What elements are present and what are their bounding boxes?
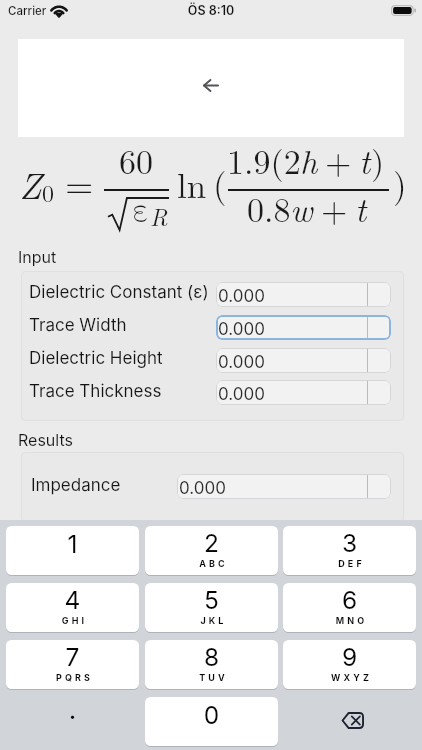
staticText: Carrier xyxy=(8,4,47,18)
staticText: PQRS xyxy=(8,672,139,683)
staticText: . xyxy=(6,694,139,725)
staticText: t xyxy=(359,136,371,184)
button[interactable]: Back xyxy=(197,73,225,98)
staticText: ε xyxy=(132,194,151,229)
staticText: TUV xyxy=(147,672,278,683)
staticText: JKL xyxy=(147,615,278,626)
staticText: 7 xyxy=(6,642,139,672)
staticText: 9 xyxy=(283,642,416,672)
staticText: 0.000 xyxy=(218,352,265,373)
staticText: DEF xyxy=(285,558,416,569)
button[interactable]: 4 xyxy=(6,583,139,632)
button[interactable]: 0.000 xyxy=(216,315,391,340)
button[interactable]: 6 xyxy=(283,583,416,632)
staticText: Impedance xyxy=(31,475,121,496)
staticText: Z xyxy=(19,157,42,209)
staticText: 4 xyxy=(6,585,139,615)
staticText: ÖS 8:10 xyxy=(0,3,422,18)
button[interactable]: Decimal point xyxy=(6,697,139,746)
staticText: 0 xyxy=(42,175,54,209)
staticText: Input xyxy=(18,247,57,266)
staticText: ( xyxy=(213,158,227,208)
staticText: 3 xyxy=(283,528,416,558)
staticText: w xyxy=(290,184,313,232)
staticText: 0.000 xyxy=(218,384,265,405)
staticText: ) xyxy=(371,136,385,184)
button[interactable]: 3 xyxy=(283,526,416,575)
button[interactable]: 0.000 xyxy=(177,474,391,499)
staticText: 1.9(2 xyxy=(227,136,301,184)
staticText: t xyxy=(355,184,367,232)
staticText: ABC xyxy=(147,558,278,569)
staticText: 0.000 xyxy=(218,286,265,307)
staticText: 8 xyxy=(145,642,278,672)
staticText: Trace Width xyxy=(29,315,127,336)
button[interactable]: 2 xyxy=(145,526,278,575)
staticText: 0 xyxy=(145,700,278,730)
staticText: 0.8 xyxy=(247,184,291,232)
staticText: Trace Thickness xyxy=(29,381,162,402)
staticText: WXYZ xyxy=(285,672,416,683)
staticText: 0.000 xyxy=(218,319,265,340)
staticText: h xyxy=(300,136,318,184)
staticText: + xyxy=(325,136,352,184)
staticText: 2 xyxy=(145,528,278,558)
button[interactable]: 0.000 xyxy=(216,380,391,405)
button[interactable]: 0.000 xyxy=(216,282,391,307)
staticText: ) xyxy=(393,158,407,208)
button[interactable]: 7 xyxy=(6,640,139,689)
button[interactable]: 8 xyxy=(145,640,278,689)
staticText: 60 xyxy=(119,136,153,184)
staticText: ln xyxy=(177,159,207,209)
staticText: R xyxy=(150,199,168,233)
button[interactable]: 1 xyxy=(6,526,139,575)
button[interactable]: 0.000 xyxy=(216,348,391,373)
staticText: MNO xyxy=(285,615,416,626)
button[interactable]: 9 xyxy=(283,640,416,689)
button[interactable]: 0 xyxy=(145,697,278,746)
staticText: Dielectric Constant (ε) xyxy=(29,282,209,303)
staticText: Dielectric Height xyxy=(29,348,163,369)
staticText: Results xyxy=(18,430,73,449)
staticText: + xyxy=(321,184,348,232)
button[interactable]: 5 xyxy=(145,583,278,632)
staticText: 6 xyxy=(283,585,416,615)
staticText: 0.000 xyxy=(179,478,226,499)
staticText: 5 xyxy=(145,585,278,615)
staticText: 1 xyxy=(6,529,139,559)
button[interactable]: Backspace xyxy=(283,697,416,746)
staticText: = xyxy=(65,157,94,209)
staticText: GHI xyxy=(8,615,139,626)
